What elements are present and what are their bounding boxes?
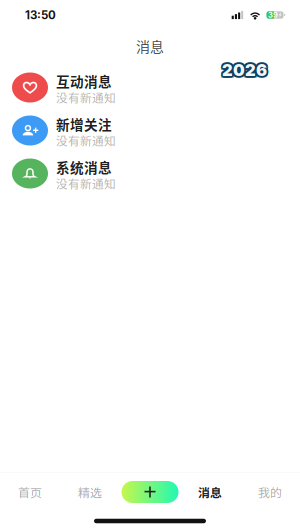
staticText: 2026: [221, 61, 266, 81]
staticText: 2026: [222, 62, 267, 82]
staticText: 2026: [223, 58, 268, 78]
staticText: 2026: [220, 58, 265, 78]
button[interactable]: 首页: [0, 472, 60, 512]
staticText: 新增关注: [56, 114, 112, 134]
button[interactable]: 系统消息: [0, 152, 300, 195]
button[interactable]: 消息: [180, 472, 240, 512]
staticText: 13:50: [25, 8, 56, 22]
button[interactable]: Create: [120, 472, 180, 512]
staticText: 2026: [224, 60, 269, 80]
staticText: 2026: [222, 61, 267, 81]
button[interactable]: 我的: [240, 472, 300, 512]
staticText: 2026: [220, 60, 265, 80]
staticText: 2026: [222, 59, 267, 79]
staticText: 精选: [78, 483, 102, 501]
button[interactable]: 新增关注: [0, 109, 300, 152]
staticText: 2026: [222, 60, 267, 80]
staticText: 2026: [221, 60, 266, 80]
staticText: 系统消息: [56, 157, 112, 177]
button[interactable]: 精选: [60, 472, 120, 512]
staticText: 我的: [258, 483, 282, 501]
staticText: 没有新通知: [56, 132, 116, 149]
staticText: 消息: [136, 36, 164, 56]
staticText: 2026: [223, 59, 268, 79]
staticText: 没有新通知: [56, 175, 116, 192]
staticText: 2026: [223, 60, 268, 80]
staticText: 39: [268, 10, 278, 20]
staticText: 2026: [220, 61, 265, 81]
button[interactable]: 互动消息: [0, 66, 300, 109]
staticText: 首页: [18, 483, 42, 501]
staticText: 2026: [222, 58, 267, 78]
staticText: 消息: [198, 483, 222, 501]
staticText: 2026: [223, 61, 268, 81]
staticText: 互动消息: [56, 71, 112, 91]
staticText: 没有新通知: [56, 89, 116, 106]
staticText: 2026: [221, 59, 266, 79]
staticText: 2026: [223, 61, 268, 81]
